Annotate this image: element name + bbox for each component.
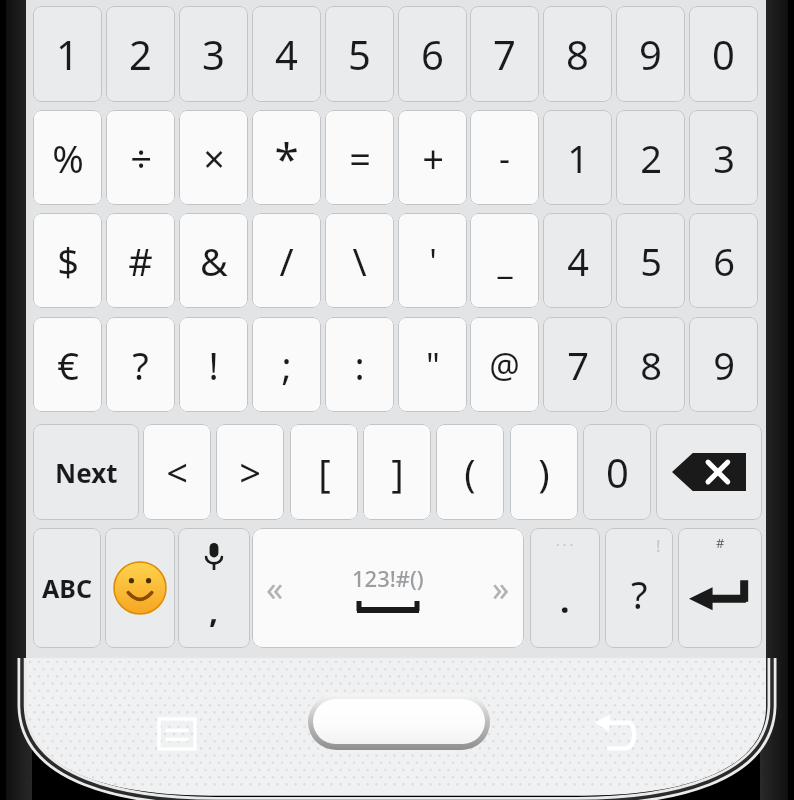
staticText: 3 [202, 27, 225, 81]
staticText: 6 [713, 235, 735, 287]
staticText: · · · [556, 536, 574, 554]
staticText: € [57, 339, 79, 391]
button[interactable]: Space [252, 528, 524, 648]
button[interactable]: " [398, 317, 467, 412]
staticText: * [274, 128, 299, 188]
button[interactable]: ' [398, 213, 467, 308]
staticText: + [422, 132, 444, 184]
button[interactable]: [ [290, 424, 358, 520]
button[interactable]: > [216, 424, 284, 520]
button[interactable]: 4 [543, 213, 612, 308]
staticText: » [492, 565, 510, 611]
button[interactable]: # [106, 213, 175, 308]
button[interactable]: ABC [33, 528, 101, 648]
button[interactable]: 1 [33, 6, 102, 102]
staticText: \ [352, 235, 367, 287]
staticText: ' [429, 238, 437, 284]
staticText: > [239, 446, 261, 498]
button[interactable]: Enter [678, 528, 762, 648]
button[interactable]: Voice input and comma [178, 528, 250, 648]
staticText: $ [57, 235, 79, 287]
button[interactable]: 7 [543, 317, 612, 412]
button[interactable]: 9 [616, 6, 685, 102]
staticText: % [52, 132, 84, 184]
staticText: ; [281, 339, 292, 391]
staticText: 1 [567, 132, 589, 184]
button[interactable]: 2 [616, 110, 685, 205]
button[interactable]: $ [33, 213, 102, 308]
button[interactable]: Period [530, 528, 600, 648]
button[interactable]: ; [252, 317, 321, 412]
button[interactable]: & [179, 213, 248, 308]
staticText: 0 [606, 445, 629, 499]
button[interactable]: × [179, 110, 248, 205]
staticText: 4 [567, 235, 589, 287]
staticText: - [499, 135, 510, 181]
staticText: # [128, 235, 153, 287]
button[interactable]: 1 [543, 110, 612, 205]
button[interactable]: 5 [616, 213, 685, 308]
staticText: 7 [567, 339, 589, 391]
staticText: ÷ [130, 132, 152, 184]
button[interactable]: Back [578, 702, 648, 766]
button[interactable]: * [252, 110, 321, 205]
button[interactable]: ? [106, 317, 175, 412]
button[interactable]: 3 [179, 6, 248, 102]
button[interactable]: Backspace [656, 424, 762, 520]
button[interactable]: - [470, 110, 539, 205]
staticText: 2 [129, 27, 152, 81]
staticText: , [209, 589, 219, 633]
button[interactable]: 3 [689, 110, 758, 205]
button[interactable]: 5 [325, 6, 394, 102]
button[interactable]: \ [325, 213, 394, 308]
staticText: 7 [493, 27, 516, 81]
staticText: [ [318, 446, 331, 498]
button[interactable]: 8 [543, 6, 612, 102]
button[interactable]: ) [510, 424, 578, 520]
button[interactable]: 6 [398, 6, 467, 102]
staticText: . [560, 577, 570, 623]
button[interactable]: ! [179, 317, 248, 412]
button[interactable]: % [33, 110, 102, 205]
staticText: ? [132, 339, 149, 391]
button[interactable]: ! [605, 528, 673, 648]
staticText: 5 [348, 27, 371, 81]
button[interactable]: 6 [689, 213, 758, 308]
button[interactable]: : [325, 317, 394, 412]
staticText: & [200, 235, 228, 287]
button[interactable]: 7 [470, 6, 539, 102]
staticText: ! [656, 534, 661, 557]
button[interactable]: + [398, 110, 467, 205]
button[interactable]: 8 [616, 317, 685, 412]
button[interactable]: = [325, 110, 394, 205]
button[interactable]: ] [363, 424, 431, 520]
button[interactable]: 4 [252, 6, 321, 102]
button[interactable]: ÷ [106, 110, 175, 205]
button[interactable]: @ [470, 317, 539, 412]
button[interactable]: Menu [145, 706, 209, 762]
staticText: # [716, 534, 725, 552]
staticText: 1 [56, 27, 79, 81]
staticText: / [279, 235, 294, 287]
staticText: 8 [640, 339, 662, 391]
staticText: ( [464, 446, 476, 498]
button[interactable]: € [33, 317, 102, 412]
button[interactable]: / [252, 213, 321, 308]
button[interactable]: 9 [689, 317, 758, 412]
button[interactable]: 2 [106, 6, 175, 102]
staticText: Next [55, 455, 118, 490]
button[interactable]: Emoji [105, 528, 175, 648]
staticText: ! [208, 339, 219, 391]
button[interactable]: 0 [689, 6, 758, 102]
staticText: @ [489, 342, 520, 388]
button[interactable]: < [143, 424, 211, 520]
button[interactable]: _ [470, 213, 539, 308]
button[interactable]: 0 [583, 424, 651, 520]
staticText: 3 [713, 132, 735, 184]
staticText: 9 [639, 27, 662, 81]
button[interactable]: Home [308, 694, 490, 750]
staticText: : [354, 339, 365, 391]
staticText: = [349, 132, 371, 184]
button[interactable]: Next [33, 424, 139, 520]
button[interactable]: ( [436, 424, 504, 520]
